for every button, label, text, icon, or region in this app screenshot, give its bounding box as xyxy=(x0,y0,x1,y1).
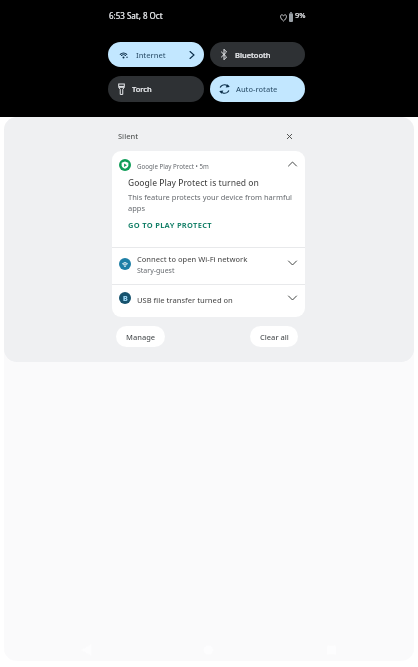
staticText: USB file transfer turned on xyxy=(137,295,233,305)
button[interactable]: Manage xyxy=(116,326,165,347)
staticText: 9% xyxy=(295,10,306,20)
button[interactable] xyxy=(77,641,97,659)
button[interactable]: Auto-rotate xyxy=(210,76,305,102)
staticText: 6:53 Sat, 8 Oct xyxy=(109,10,163,21)
button[interactable]: Bluetooth xyxy=(210,42,305,67)
staticText: Auto-rotate xyxy=(236,84,278,94)
staticText: Google Play Protect • 5m xyxy=(137,162,209,170)
staticText: B xyxy=(123,294,128,304)
staticText: Silent xyxy=(118,131,139,141)
button[interactable]: Internet xyxy=(108,42,204,67)
staticText: Clear all xyxy=(260,332,289,342)
button[interactable] xyxy=(322,641,341,659)
staticText: Manage xyxy=(126,332,156,342)
button[interactable]: B xyxy=(112,285,305,317)
button[interactable] xyxy=(199,641,218,659)
staticText: Connect to open Wi-Fi network xyxy=(137,254,248,264)
button[interactable]: Google Play Protect • 5m xyxy=(112,151,305,247)
staticText: Internet xyxy=(136,50,166,60)
button[interactable]: Torch xyxy=(108,76,204,102)
staticText: Google Play Protect is turned on xyxy=(128,177,259,189)
button[interactable]: GO TO PLAY PROTECT xyxy=(128,220,212,230)
button[interactable] xyxy=(284,131,295,142)
button[interactable]: Clear all xyxy=(250,326,298,347)
staticText: Stary-guest xyxy=(137,266,175,276)
staticText: Bluetooth xyxy=(235,50,271,60)
staticText: Torch xyxy=(132,84,152,94)
staticText: This feature protects your device from h… xyxy=(128,192,293,213)
button[interactable]: Connect to open Wi-Fi network xyxy=(112,248,305,284)
